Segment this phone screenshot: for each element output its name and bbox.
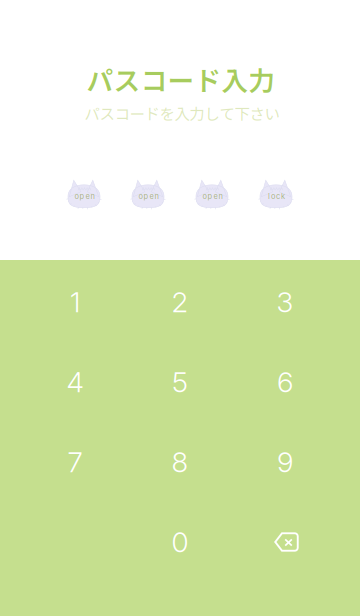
button[interactable]: 5: [127, 342, 232, 422]
button[interactable]: 0: [127, 502, 232, 582]
staticText: 0: [171, 525, 188, 559]
staticText: 3: [276, 285, 293, 319]
button[interactable]: 3: [232, 262, 337, 342]
staticText: パスコードを入力して下さい: [84, 102, 279, 124]
staticText: 5: [172, 365, 188, 399]
staticText: 1: [70, 285, 80, 319]
button[interactable]: 9: [232, 422, 337, 502]
staticText: 2: [171, 285, 188, 319]
staticText: 7: [67, 445, 82, 479]
button[interactable]: 6: [232, 342, 337, 422]
staticText: open: [138, 192, 158, 201]
button[interactable]: Delete: [234, 502, 339, 582]
staticText: 4: [66, 365, 83, 399]
button[interactable]: 4: [22, 342, 127, 422]
staticText: 6: [277, 365, 293, 399]
staticText: 8: [171, 445, 188, 479]
staticText: lock: [268, 192, 285, 201]
staticText: open: [74, 192, 94, 201]
staticText: open: [202, 192, 222, 201]
staticText: 9: [277, 445, 293, 479]
button[interactable]: 2: [127, 262, 232, 342]
button[interactable]: 1: [22, 262, 127, 342]
staticText: パスコード入力: [86, 60, 275, 98]
button[interactable]: 8: [127, 422, 232, 502]
button[interactable]: 7: [22, 422, 127, 502]
